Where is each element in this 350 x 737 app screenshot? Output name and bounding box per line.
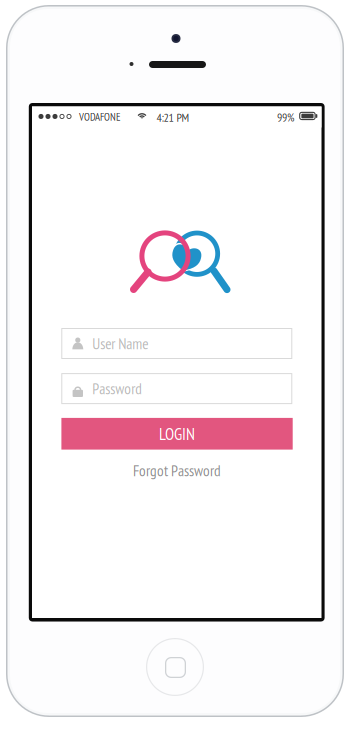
button[interactable]: User Name bbox=[61, 328, 292, 359]
staticText: Password bbox=[92, 379, 142, 398]
staticText: 99% bbox=[277, 110, 294, 125]
staticText: VODAFONE bbox=[79, 110, 121, 124]
staticText: Forgot Password bbox=[133, 461, 221, 480]
button[interactable]: Password bbox=[61, 373, 292, 404]
button[interactable]: LOGIN bbox=[61, 418, 293, 450]
staticText: 4:21 PM bbox=[157, 110, 190, 125]
staticText: LOGIN bbox=[159, 423, 195, 445]
button[interactable]: Forgot Password bbox=[61, 462, 293, 478]
staticText: User Name bbox=[92, 334, 148, 353]
